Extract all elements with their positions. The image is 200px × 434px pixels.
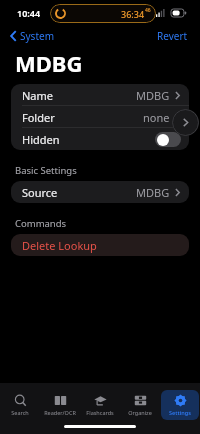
staticText: Folder bbox=[22, 110, 55, 125]
staticText: 10:44 bbox=[17, 7, 41, 19]
staticText: 46 bbox=[145, 7, 151, 14]
staticText: System bbox=[20, 29, 54, 43]
staticText: Hidden bbox=[22, 132, 60, 147]
staticText: Search bbox=[11, 409, 29, 416]
button[interactable]: Organize bbox=[121, 390, 159, 420]
staticText: Settings bbox=[169, 409, 191, 416]
staticText: MDBG bbox=[15, 48, 83, 78]
staticText: 36:34 bbox=[121, 8, 145, 20]
button[interactable]: 36:34 bbox=[50, 4, 156, 23]
staticText: Organize bbox=[128, 409, 152, 416]
staticText: Flashcards bbox=[86, 409, 114, 416]
button[interactable]: Search bbox=[1, 390, 39, 420]
button[interactable]: Revert bbox=[145, 27, 200, 45]
staticText: Basic Settings bbox=[15, 164, 77, 177]
button[interactable]: Folder bbox=[11, 106, 189, 128]
button[interactable]: Flashcards bbox=[81, 390, 119, 420]
staticText: MDBG bbox=[136, 185, 170, 200]
button[interactable]: System bbox=[7, 27, 57, 45]
staticText: Delete Lookup bbox=[22, 238, 97, 253]
staticText: Source bbox=[22, 185, 58, 200]
staticText: Name bbox=[22, 88, 54, 103]
staticText: none bbox=[143, 110, 170, 125]
staticText: Commands bbox=[15, 217, 67, 230]
button[interactable]: Source bbox=[11, 181, 189, 203]
staticText: Reader/OCR bbox=[44, 409, 76, 416]
button[interactable]: Settings bbox=[161, 390, 199, 420]
button[interactable]: Name bbox=[11, 84, 189, 106]
button[interactable]: Reader/OCR bbox=[41, 390, 79, 420]
button[interactable]: Next bbox=[172, 109, 199, 136]
staticText: MDBG bbox=[136, 88, 170, 103]
button[interactable]: Hidden bbox=[11, 128, 189, 150]
button[interactable]: Delete Lookup bbox=[11, 234, 189, 256]
